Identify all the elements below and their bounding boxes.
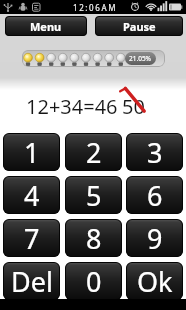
staticText: 3 [147, 134, 163, 171]
staticText: 8 [86, 220, 102, 257]
staticText: 6 [147, 177, 163, 214]
staticText: 12:06AM [73, 2, 118, 13]
staticText: 0 [86, 263, 102, 300]
button[interactable]: Ok [126, 262, 183, 300]
staticText: 2 [86, 134, 102, 171]
button[interactable]: 3 [126, 133, 183, 171]
staticText: Del [11, 263, 53, 300]
staticText: Pause [123, 19, 156, 34]
button[interactable]: 2 [65, 133, 122, 171]
staticText: 50 [122, 93, 145, 120]
staticText: 7 [24, 220, 40, 257]
staticText: Ok [137, 263, 173, 300]
button[interactable]: 7 [3, 219, 60, 257]
staticText: 4 [24, 177, 40, 214]
button[interactable]: 1 [3, 133, 60, 171]
staticText: 1 [24, 134, 40, 171]
button[interactable]: 4 [3, 176, 60, 214]
staticText: 21.05% [129, 54, 152, 63]
button[interactable]: 5 [65, 176, 122, 214]
staticText: 12+34=46 [26, 93, 118, 120]
button[interactable]: Pause [95, 16, 183, 36]
button[interactable]: Del [3, 262, 60, 300]
button[interactable]: 6 [126, 176, 183, 214]
button[interactable]: 0 [65, 262, 122, 300]
button[interactable]: 8 [65, 219, 122, 257]
staticText: 9 [147, 220, 163, 257]
staticText: Menu [30, 19, 62, 34]
button[interactable]: Menu [5, 16, 87, 36]
button[interactable]: 9 [126, 219, 183, 257]
staticText: 5 [86, 177, 102, 214]
